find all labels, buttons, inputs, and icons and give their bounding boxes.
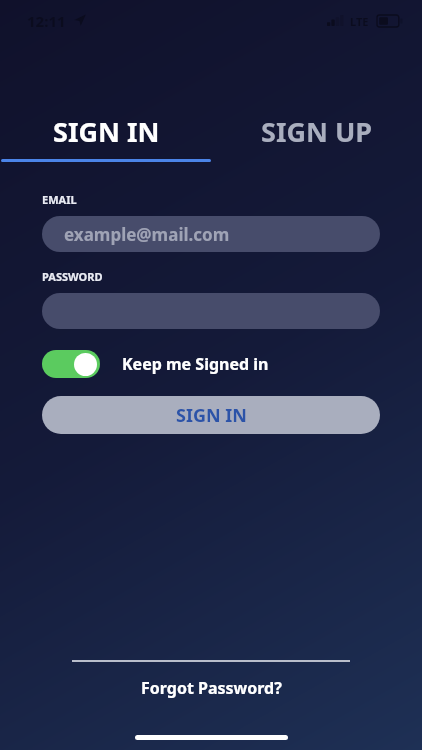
staticText: example@mail.com [64,223,230,246]
staticText: LTE [350,14,369,29]
button[interactable]: example@mail.com [42,216,380,252]
staticText: EMAIL [42,192,77,207]
button[interactable]: Forgot Password? [0,677,422,699]
staticText: 12:11 [27,11,66,31]
button[interactable]: SIGN IN [42,396,380,434]
button[interactable]: Keep me signed in toggle [42,350,100,378]
staticText: SIGN UP [261,113,373,150]
staticText: Keep me Signed in [122,353,269,375]
button[interactable]: SIGN IN [0,113,211,171]
button[interactable] [42,293,380,329]
staticText: SIGN IN [176,403,247,428]
staticText: SIGN IN [53,113,160,150]
button[interactable]: SIGN UP [211,113,422,171]
staticText: PASSWORD [42,269,103,284]
staticText: Forgot Password? [141,677,282,699]
